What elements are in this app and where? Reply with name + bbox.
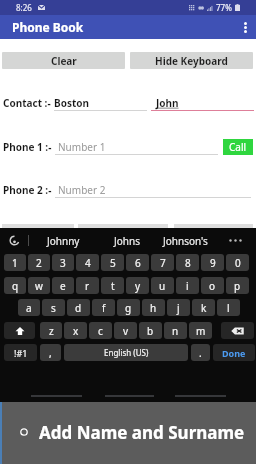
staticText: John	[156, 96, 179, 110]
staticText: Johns	[114, 234, 140, 248]
staticText: 6	[135, 256, 141, 270]
staticText: d	[75, 301, 82, 315]
button[interactable]: Johnny	[29, 229, 98, 252]
button[interactable]: z	[40, 322, 62, 339]
button[interactable]: Number 2	[55, 179, 251, 201]
button[interactable]: x	[64, 322, 87, 339]
button[interactable]: 7	[151, 254, 174, 271]
staticText: s	[51, 301, 56, 315]
button[interactable]: Clear	[2, 52, 125, 69]
staticText: Number 1	[58, 140, 106, 154]
button[interactable]: 4	[76, 254, 99, 271]
button[interactable]: Hide Keyboard	[130, 52, 253, 69]
staticText: o	[209, 279, 216, 293]
button[interactable]: 9	[201, 254, 224, 271]
button[interactable]: n	[164, 322, 187, 339]
staticText: 0	[235, 256, 241, 270]
button[interactable]: Johns	[98, 229, 156, 252]
staticText: i	[186, 279, 189, 293]
staticText: 8:26	[16, 2, 32, 13]
button[interactable]: p	[226, 277, 249, 294]
staticText: t	[111, 279, 115, 293]
staticText: Call	[229, 140, 247, 154]
button[interactable]: t	[101, 277, 124, 294]
button[interactable]: More suggestions	[215, 229, 256, 252]
button[interactable]: Johnson's	[156, 229, 215, 252]
button[interactable]: k	[192, 299, 215, 316]
button[interactable]: r	[76, 277, 99, 294]
button[interactable]: 1	[4, 254, 26, 271]
button[interactable]: English (US)	[64, 344, 188, 361]
button[interactable]: g	[117, 299, 140, 316]
button[interactable]: Add Name and Surname	[0, 402, 256, 464]
button[interactable]: Shift	[4, 322, 35, 339]
staticText: b	[147, 324, 154, 338]
button[interactable]: Boston	[54, 92, 147, 114]
button[interactable]: o	[201, 277, 224, 294]
staticText: 2	[36, 256, 42, 270]
button[interactable]: d	[67, 299, 90, 316]
staticText: x	[73, 324, 79, 338]
button[interactable]: 3	[52, 254, 74, 271]
staticText: !#1	[14, 347, 28, 359]
button[interactable]: j	[167, 299, 190, 316]
button[interactable]: 6	[126, 254, 149, 271]
staticText: Johnny	[47, 234, 80, 248]
staticText: q	[12, 279, 19, 293]
button[interactable]: y	[126, 277, 149, 294]
button[interactable]: John	[151, 92, 254, 114]
button[interactable]: !#1	[4, 344, 37, 361]
staticText: e	[60, 279, 66, 293]
staticText: y	[135, 279, 141, 293]
staticText: 8	[185, 256, 191, 270]
staticText: 7	[160, 256, 166, 270]
button[interactable]: c	[89, 322, 112, 339]
staticText: g	[125, 301, 132, 315]
staticText: z	[49, 324, 54, 338]
staticText: Clear	[51, 54, 77, 68]
button[interactable]: a	[18, 299, 40, 316]
staticText: Done	[222, 347, 246, 359]
staticText: Phone Book	[12, 19, 84, 35]
button[interactable]: Voice typing	[0, 229, 28, 252]
button[interactable]: Done	[213, 344, 255, 361]
button[interactable]: v	[114, 322, 137, 339]
button[interactable]: u	[151, 277, 174, 294]
staticText: Johnson's	[163, 234, 208, 248]
button[interactable]: w	[28, 277, 50, 294]
button[interactable]: i	[176, 277, 199, 294]
button[interactable]: .	[191, 344, 210, 361]
staticText: 3	[60, 256, 66, 270]
staticText: j	[177, 301, 180, 315]
button[interactable]: q	[4, 277, 26, 294]
staticText: 1	[12, 256, 18, 270]
button[interactable]: e	[52, 277, 74, 294]
staticText: Phone 2 :-	[3, 183, 52, 197]
button[interactable]: h	[142, 299, 165, 316]
staticText: 5	[110, 256, 116, 270]
staticText: m	[196, 324, 206, 338]
staticText: w	[35, 279, 43, 293]
button[interactable]: 5	[101, 254, 124, 271]
button[interactable]: Number 1	[55, 136, 218, 158]
staticText: .	[199, 346, 202, 360]
button[interactable]: ,	[40, 344, 61, 361]
staticText: Hide Keyboard	[155, 54, 228, 68]
button[interactable]: More options	[234, 15, 256, 39]
button[interactable]: b	[139, 322, 162, 339]
staticText: c	[98, 324, 103, 338]
staticText: h	[150, 301, 157, 315]
staticText: 4	[85, 256, 91, 270]
staticText: Contact :-	[3, 96, 51, 110]
button[interactable]: f	[92, 299, 115, 316]
button[interactable]: s	[42, 299, 65, 316]
staticText: Number 2	[58, 183, 106, 197]
staticText: l	[227, 301, 230, 315]
button[interactable]: 2	[28, 254, 50, 271]
button[interactable]: Call	[223, 139, 253, 155]
button[interactable]: Backspace	[221, 322, 254, 339]
button[interactable]: 8	[176, 254, 199, 271]
button[interactable]: l	[217, 299, 240, 316]
button[interactable]: m	[189, 322, 212, 339]
button[interactable]: 0	[226, 254, 249, 271]
